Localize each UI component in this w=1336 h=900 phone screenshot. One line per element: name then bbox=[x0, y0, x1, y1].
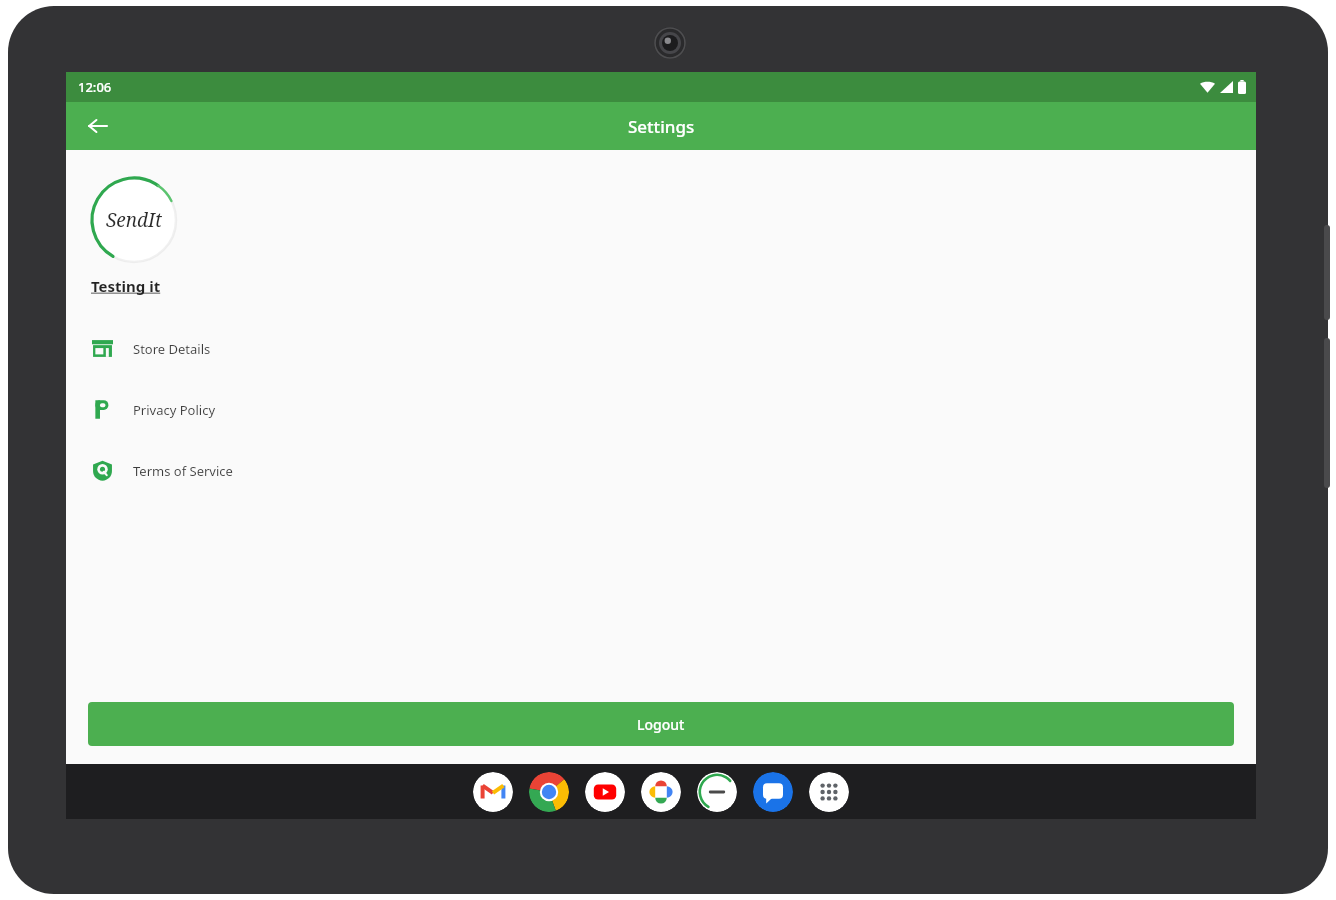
button[interactable]: Photos bbox=[641, 772, 681, 812]
staticText: Terms of Service bbox=[133, 462, 233, 480]
button[interactable]: Store Details bbox=[66, 318, 1256, 379]
staticText: Logout bbox=[637, 715, 685, 734]
button[interactable]: Gmail bbox=[473, 772, 513, 812]
staticText: Settings bbox=[628, 115, 695, 138]
button[interactable]: Privacy Policy bbox=[66, 379, 1256, 440]
button[interactable]: Terms of Service bbox=[66, 440, 1256, 501]
staticText: 12:06 bbox=[78, 78, 112, 96]
button[interactable]: Chrome bbox=[529, 772, 569, 812]
staticText: Store Details bbox=[133, 340, 211, 358]
button[interactable]: Back bbox=[80, 108, 116, 144]
button[interactable]: Logout bbox=[88, 702, 1234, 746]
button[interactable]: Messages bbox=[753, 772, 793, 812]
staticText: SendIt bbox=[106, 207, 163, 233]
button[interactable]: YouTube bbox=[585, 772, 625, 812]
button[interactable]: All apps bbox=[809, 772, 849, 812]
staticText: Testing it bbox=[91, 276, 161, 296]
button[interactable]: SendIt bbox=[697, 772, 737, 812]
staticText: Privacy Policy bbox=[133, 401, 216, 419]
